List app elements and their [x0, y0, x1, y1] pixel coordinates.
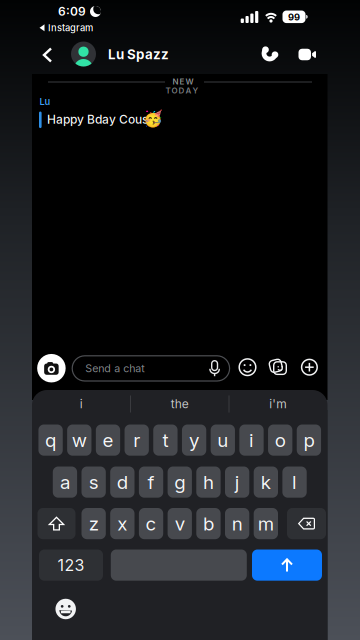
button[interactable]: z	[81, 508, 106, 539]
button[interactable]: n	[225, 508, 249, 539]
staticText: v	[175, 513, 185, 535]
staticText: T O D A Y	[165, 86, 198, 95]
button[interactable]	[235, 355, 260, 379]
staticText: w	[72, 429, 87, 451]
button[interactable]: p	[297, 424, 321, 456]
button[interactable]	[287, 508, 326, 539]
staticText: Lu	[39, 96, 50, 107]
button[interactable]: Lu Spazz	[108, 43, 228, 65]
button[interactable]	[49, 593, 82, 625]
staticText: e	[102, 429, 113, 451]
button[interactable]	[298, 355, 321, 379]
button[interactable]	[252, 549, 322, 581]
staticText: 6:09	[58, 4, 86, 19]
button[interactable]: q	[38, 424, 63, 456]
button[interactable]: e	[96, 424, 120, 456]
button[interactable]: f	[139, 466, 163, 498]
staticText: i'm	[269, 397, 287, 411]
button[interactable]: b	[196, 508, 221, 539]
staticText: u	[217, 429, 228, 451]
button[interactable]: x	[110, 508, 134, 539]
button[interactable]: c	[139, 508, 163, 539]
staticText: Happy Bday Cous	[47, 112, 148, 127]
staticText: the	[171, 397, 189, 411]
staticText: Instagram	[48, 22, 93, 33]
staticText: i	[80, 397, 83, 411]
staticText: Lu Spazz	[108, 47, 169, 62]
button[interactable]: h	[196, 466, 221, 498]
staticText: n	[232, 513, 243, 535]
staticText: y	[189, 429, 199, 451]
staticText: o	[275, 429, 286, 451]
staticText: f	[147, 471, 154, 493]
button[interactable]: i	[36, 394, 126, 414]
staticText: 99	[288, 12, 300, 23]
button[interactable]: 123	[39, 549, 103, 581]
staticText: i	[249, 429, 254, 451]
staticText: k	[261, 471, 271, 493]
staticText: g	[174, 471, 185, 493]
button[interactable]	[255, 40, 284, 69]
button[interactable]	[111, 549, 247, 581]
staticText: b	[203, 513, 214, 535]
button[interactable]: i'm	[233, 394, 323, 414]
button[interactable]	[37, 354, 66, 382]
staticText: z	[89, 513, 99, 535]
button[interactable]: a	[53, 466, 77, 498]
staticText: d	[117, 471, 128, 493]
button[interactable]: j	[225, 466, 249, 498]
button[interactable]: v	[168, 508, 192, 539]
button[interactable]: the	[135, 394, 225, 414]
button[interactable]: u	[211, 424, 235, 456]
staticText: h	[203, 471, 214, 493]
button[interactable]	[265, 354, 292, 380]
staticText: p	[303, 429, 314, 451]
button[interactable]: g	[168, 466, 192, 498]
staticText: Send a chat	[85, 362, 144, 375]
staticText: l	[292, 471, 297, 493]
button[interactable]: r	[124, 424, 149, 456]
staticText: N E W	[172, 77, 193, 86]
button[interactable]: o	[268, 424, 292, 456]
button[interactable]	[37, 508, 75, 539]
staticText: x	[117, 513, 127, 535]
staticText: q	[45, 429, 56, 451]
button[interactable]	[292, 43, 322, 66]
button[interactable]	[36, 41, 58, 68]
button[interactable]: Send a chat	[72, 356, 230, 381]
staticText: t	[162, 429, 168, 451]
button[interactable]: s	[81, 466, 106, 498]
button[interactable]: y	[182, 424, 206, 456]
staticText: 123	[57, 556, 84, 575]
button[interactable]: l	[282, 466, 307, 498]
staticText: c	[146, 513, 157, 535]
staticText: s	[89, 471, 99, 493]
button[interactable]: m	[254, 508, 278, 539]
button[interactable]: t	[153, 424, 177, 456]
staticText: a	[60, 471, 70, 493]
staticText: 🥳	[143, 110, 163, 128]
staticText: j	[235, 471, 240, 493]
staticText: m	[258, 513, 274, 535]
staticText: r	[133, 429, 140, 451]
button[interactable]: k	[254, 466, 278, 498]
button[interactable]: i	[239, 424, 264, 456]
button[interactable]	[71, 41, 96, 66]
button[interactable]: Instagram	[39, 22, 93, 33]
button[interactable]: d	[110, 466, 134, 498]
button[interactable]: w	[67, 424, 91, 456]
